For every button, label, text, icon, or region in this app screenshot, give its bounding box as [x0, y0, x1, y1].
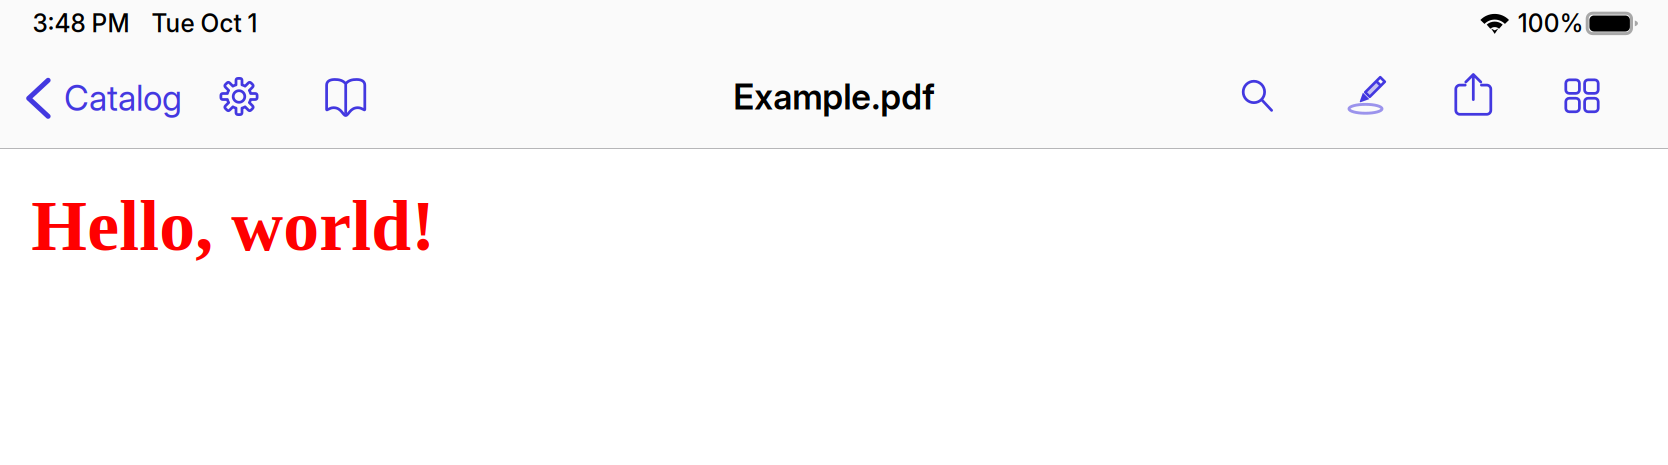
button[interactable]: Annotate: [1320, 49, 1412, 141]
button[interactable]: Catalog: [26, 54, 206, 142]
button[interactable]: Settings: [193, 50, 285, 142]
button[interactable]: Share: [1427, 48, 1519, 140]
staticText: 100%: [1518, 8, 1584, 38]
button[interactable]: Search: [1211, 50, 1303, 142]
button[interactable]: Document thumbnails: [1536, 50, 1628, 142]
staticText: Example.pdf: [733, 76, 935, 118]
button[interactable]: Reading mode: [300, 51, 392, 143]
staticText: Hello, world!: [31, 186, 435, 265]
staticText: Tue Oct 1: [151, 8, 257, 38]
staticText: Catalog: [64, 78, 182, 119]
staticText: 3:48 PM: [33, 8, 130, 38]
